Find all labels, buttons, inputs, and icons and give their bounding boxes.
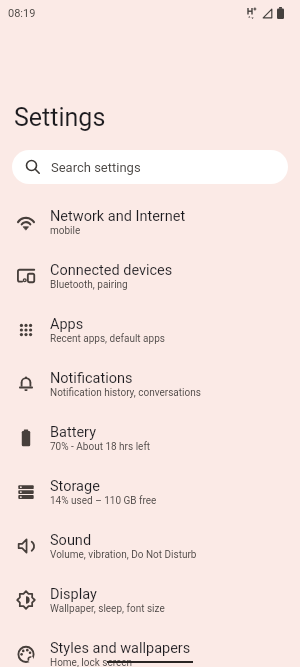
staticText: mobile xyxy=(50,225,81,237)
staticText: Settings xyxy=(14,103,106,132)
staticText: Display xyxy=(50,586,97,603)
staticText: Recent apps, default apps xyxy=(50,333,165,345)
staticText: 08:19 xyxy=(8,7,36,20)
staticText: Sound xyxy=(50,532,92,549)
staticText: Storage xyxy=(50,478,100,495)
staticText: Search settings xyxy=(51,160,141,175)
staticText: Notification history, conversations xyxy=(50,387,201,399)
staticText: Apps xyxy=(50,316,84,333)
staticText: Notifications xyxy=(50,370,133,387)
staticText: Battery xyxy=(50,424,96,441)
staticText: 14% used – 110 GB free xyxy=(50,495,157,507)
staticText: Styles and wallpapers xyxy=(50,640,191,657)
staticText: Home, lock screen xyxy=(50,657,133,667)
staticText: Bluetooth, pairing xyxy=(50,279,128,291)
staticText: Wallpaper, sleep, font size xyxy=(50,603,165,615)
staticText: Network and Internet xyxy=(50,208,186,225)
staticText: 70% - About 18 hrs left xyxy=(50,441,151,453)
staticText: Connected devices xyxy=(50,262,173,279)
staticText: Volume, vibration, Do Not Disturb xyxy=(50,549,197,561)
